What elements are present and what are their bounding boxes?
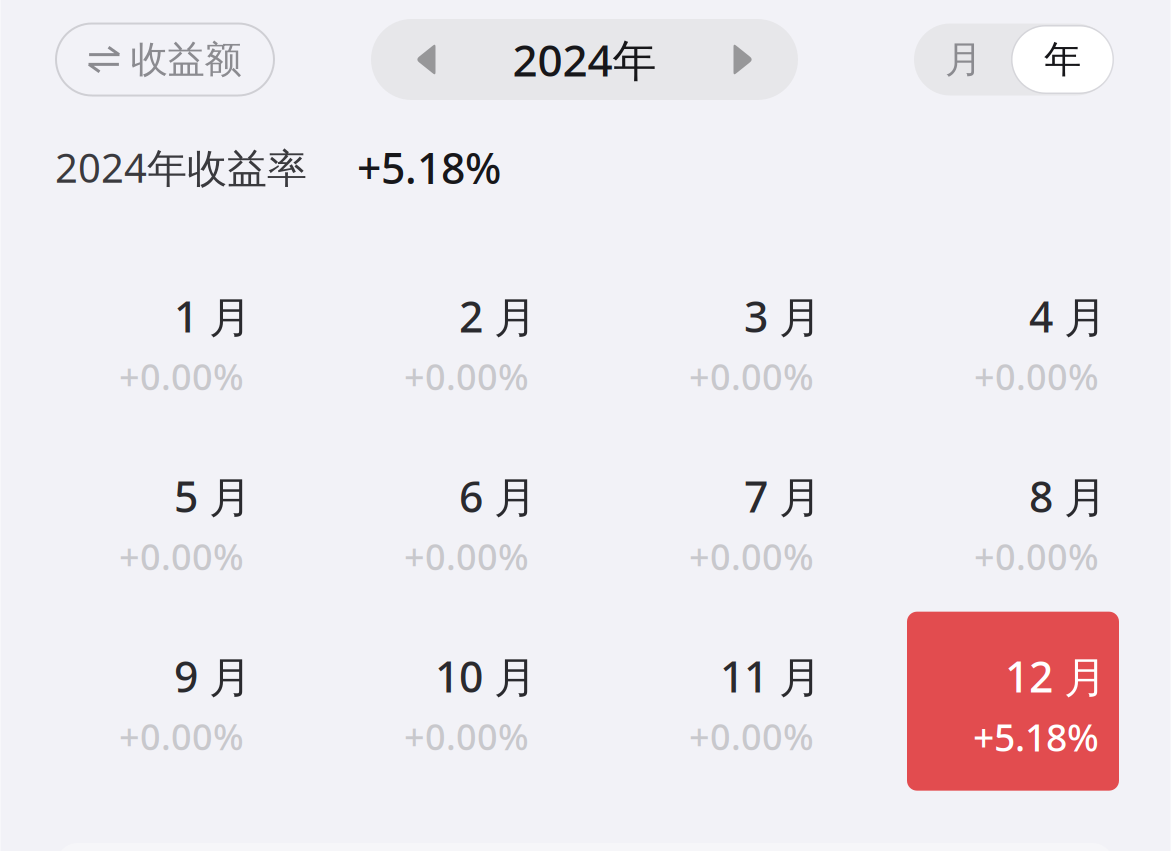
staticText: 12 月	[1005, 648, 1107, 704]
staticText: 6 月	[459, 468, 537, 524]
button[interactable]: 6 月	[337, 432, 549, 611]
staticText: 8 月	[1029, 468, 1107, 524]
staticText: +0.00%	[119, 712, 244, 760]
button[interactable]: 3 月	[622, 252, 834, 431]
button[interactable]: 5 月	[52, 432, 264, 611]
staticText: 2 月	[459, 288, 537, 344]
button[interactable]: 4 月	[907, 252, 1119, 431]
button[interactable]: 9 月	[52, 612, 264, 791]
button[interactable]: Previous year	[371, 19, 480, 100]
staticText: +0.00%	[974, 352, 1099, 400]
staticText: +0.00%	[689, 532, 814, 580]
staticText: 11 月	[720, 648, 822, 704]
staticText: +0.00%	[119, 532, 244, 580]
staticText: 1 月	[174, 288, 252, 344]
staticText: +0.00%	[689, 352, 814, 400]
staticText: +5.18%	[357, 139, 501, 196]
staticText: 2024年收益率	[55, 141, 307, 194]
staticText: +0.00%	[404, 532, 529, 580]
staticText: +0.00%	[974, 532, 1099, 580]
staticText: 4 月	[1029, 288, 1107, 344]
button[interactable]: 10 月	[337, 612, 549, 791]
staticText: 收益额	[130, 37, 241, 82]
button[interactable]: 12 月	[907, 612, 1119, 791]
staticText: 10 月	[435, 648, 537, 704]
button[interactable]: 8 月	[907, 432, 1119, 611]
button[interactable]: 月	[914, 23, 1013, 95]
button[interactable]: 11 月	[622, 612, 834, 791]
button[interactable]: 收益额	[56, 23, 274, 95]
button[interactable]: 7 月	[622, 432, 834, 611]
button[interactable]: 2 月	[337, 252, 549, 431]
staticText: +0.00%	[689, 712, 814, 760]
staticText: 2024年	[512, 30, 656, 89]
staticText: 月	[945, 37, 982, 82]
button[interactable]: Next year	[689, 19, 798, 100]
staticText: +5.18%	[973, 712, 1099, 762]
staticText: 年	[1044, 37, 1081, 82]
staticText: +0.00%	[119, 352, 244, 400]
staticText: 3 月	[744, 288, 822, 344]
staticText: +0.00%	[404, 712, 529, 760]
button[interactable]: 年	[1013, 23, 1112, 95]
staticText: +0.00%	[404, 352, 529, 400]
staticText: 5 月	[174, 468, 252, 524]
staticText: 7 月	[744, 468, 822, 524]
staticText: 9 月	[174, 648, 252, 704]
button[interactable]: 1 月	[52, 252, 264, 431]
